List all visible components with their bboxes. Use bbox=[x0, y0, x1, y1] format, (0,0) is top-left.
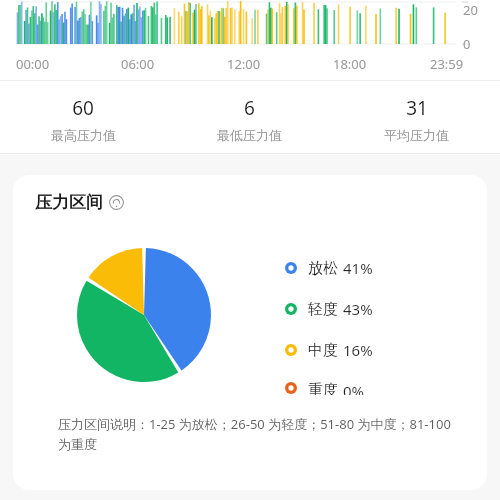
staticText: 轻度 bbox=[308, 300, 338, 319]
staticText: 压力区间说明：1-25 为放松；26-50 为轻度；51-80 为中度；81-1… bbox=[58, 415, 465, 453]
staticText: 0% bbox=[343, 381, 365, 395]
staticText: 重度 bbox=[308, 381, 338, 395]
staticText: 43% bbox=[343, 299, 373, 319]
staticText: 放松 bbox=[308, 259, 338, 278]
button[interactable]: 中度 bbox=[275, 340, 487, 360]
button[interactable]: 轻度 bbox=[275, 299, 487, 319]
staticText: 06:00 bbox=[121, 55, 155, 73]
staticText: 6 bbox=[244, 95, 255, 121]
button[interactable]: 重度 bbox=[275, 381, 487, 395]
staticText: 16% bbox=[343, 340, 373, 360]
button[interactable]: 6 bbox=[166, 95, 333, 143]
staticText: 31 bbox=[406, 95, 428, 121]
button[interactable]: Help about stress zones bbox=[109, 195, 124, 210]
staticText: 最高压力值 bbox=[51, 127, 116, 143]
button[interactable]: 60 bbox=[0, 95, 166, 143]
button[interactable]: 放松 bbox=[275, 258, 487, 278]
staticText: 中度 bbox=[308, 341, 338, 360]
staticText: 60 bbox=[72, 95, 94, 121]
staticText: 41% bbox=[343, 258, 373, 278]
staticText: 12:00 bbox=[227, 55, 261, 73]
staticText: 20 bbox=[463, 1, 478, 19]
staticText: 平均压力值 bbox=[384, 127, 449, 143]
staticText: 0 bbox=[463, 35, 471, 53]
staticText: 压力区间 bbox=[35, 192, 103, 213]
staticText: 23:59 bbox=[430, 55, 464, 73]
staticText: 18:00 bbox=[333, 55, 367, 73]
button[interactable]: 31 bbox=[333, 95, 500, 143]
button[interactable]: 压力区间 bbox=[35, 192, 124, 213]
staticText: 00:00 bbox=[16, 55, 50, 73]
staticText: 最低压力值 bbox=[217, 127, 282, 143]
